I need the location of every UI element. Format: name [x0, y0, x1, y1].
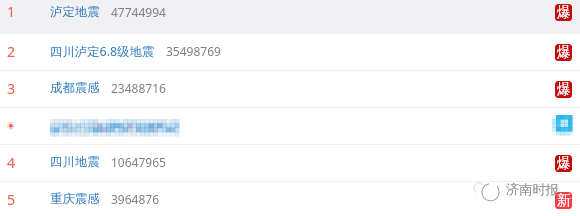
staticText: 爆: [557, 81, 571, 98]
button[interactable]: 2: [0, 34, 580, 70]
staticText: 10647965: [111, 154, 166, 170]
button[interactable]: Hidden trending topic: [0, 108, 580, 144]
staticText: 5: [7, 190, 16, 209]
button[interactable]: 4: [0, 145, 580, 181]
staticText: 济南时报: [506, 181, 559, 198]
staticText: 重庆震感: [50, 191, 100, 207]
staticText: 四川地震: [50, 154, 100, 170]
button[interactable]: 5: [0, 182, 580, 216]
staticText: 2: [7, 42, 16, 61]
staticText: 四川泸定6.8级地震: [50, 43, 155, 60]
staticText: 3: [7, 79, 16, 98]
staticText: 23488716: [111, 80, 166, 96]
staticText: 爆: [557, 44, 571, 61]
staticText: 成都震感: [50, 80, 100, 96]
staticText: 35498769: [166, 43, 221, 59]
staticText: 爆: [557, 155, 571, 172]
staticText: 新: [557, 192, 571, 209]
button[interactable]: 3: [0, 71, 580, 107]
staticText: 4: [7, 153, 16, 172]
staticText: 爆: [557, 4, 571, 21]
button[interactable]: 1: [0, 0, 580, 33]
staticText: 47744994: [111, 4, 166, 20]
staticText: 3964876: [111, 191, 160, 207]
staticText: 泸定地震: [50, 4, 100, 20]
staticText: 1: [7, 2, 16, 21]
